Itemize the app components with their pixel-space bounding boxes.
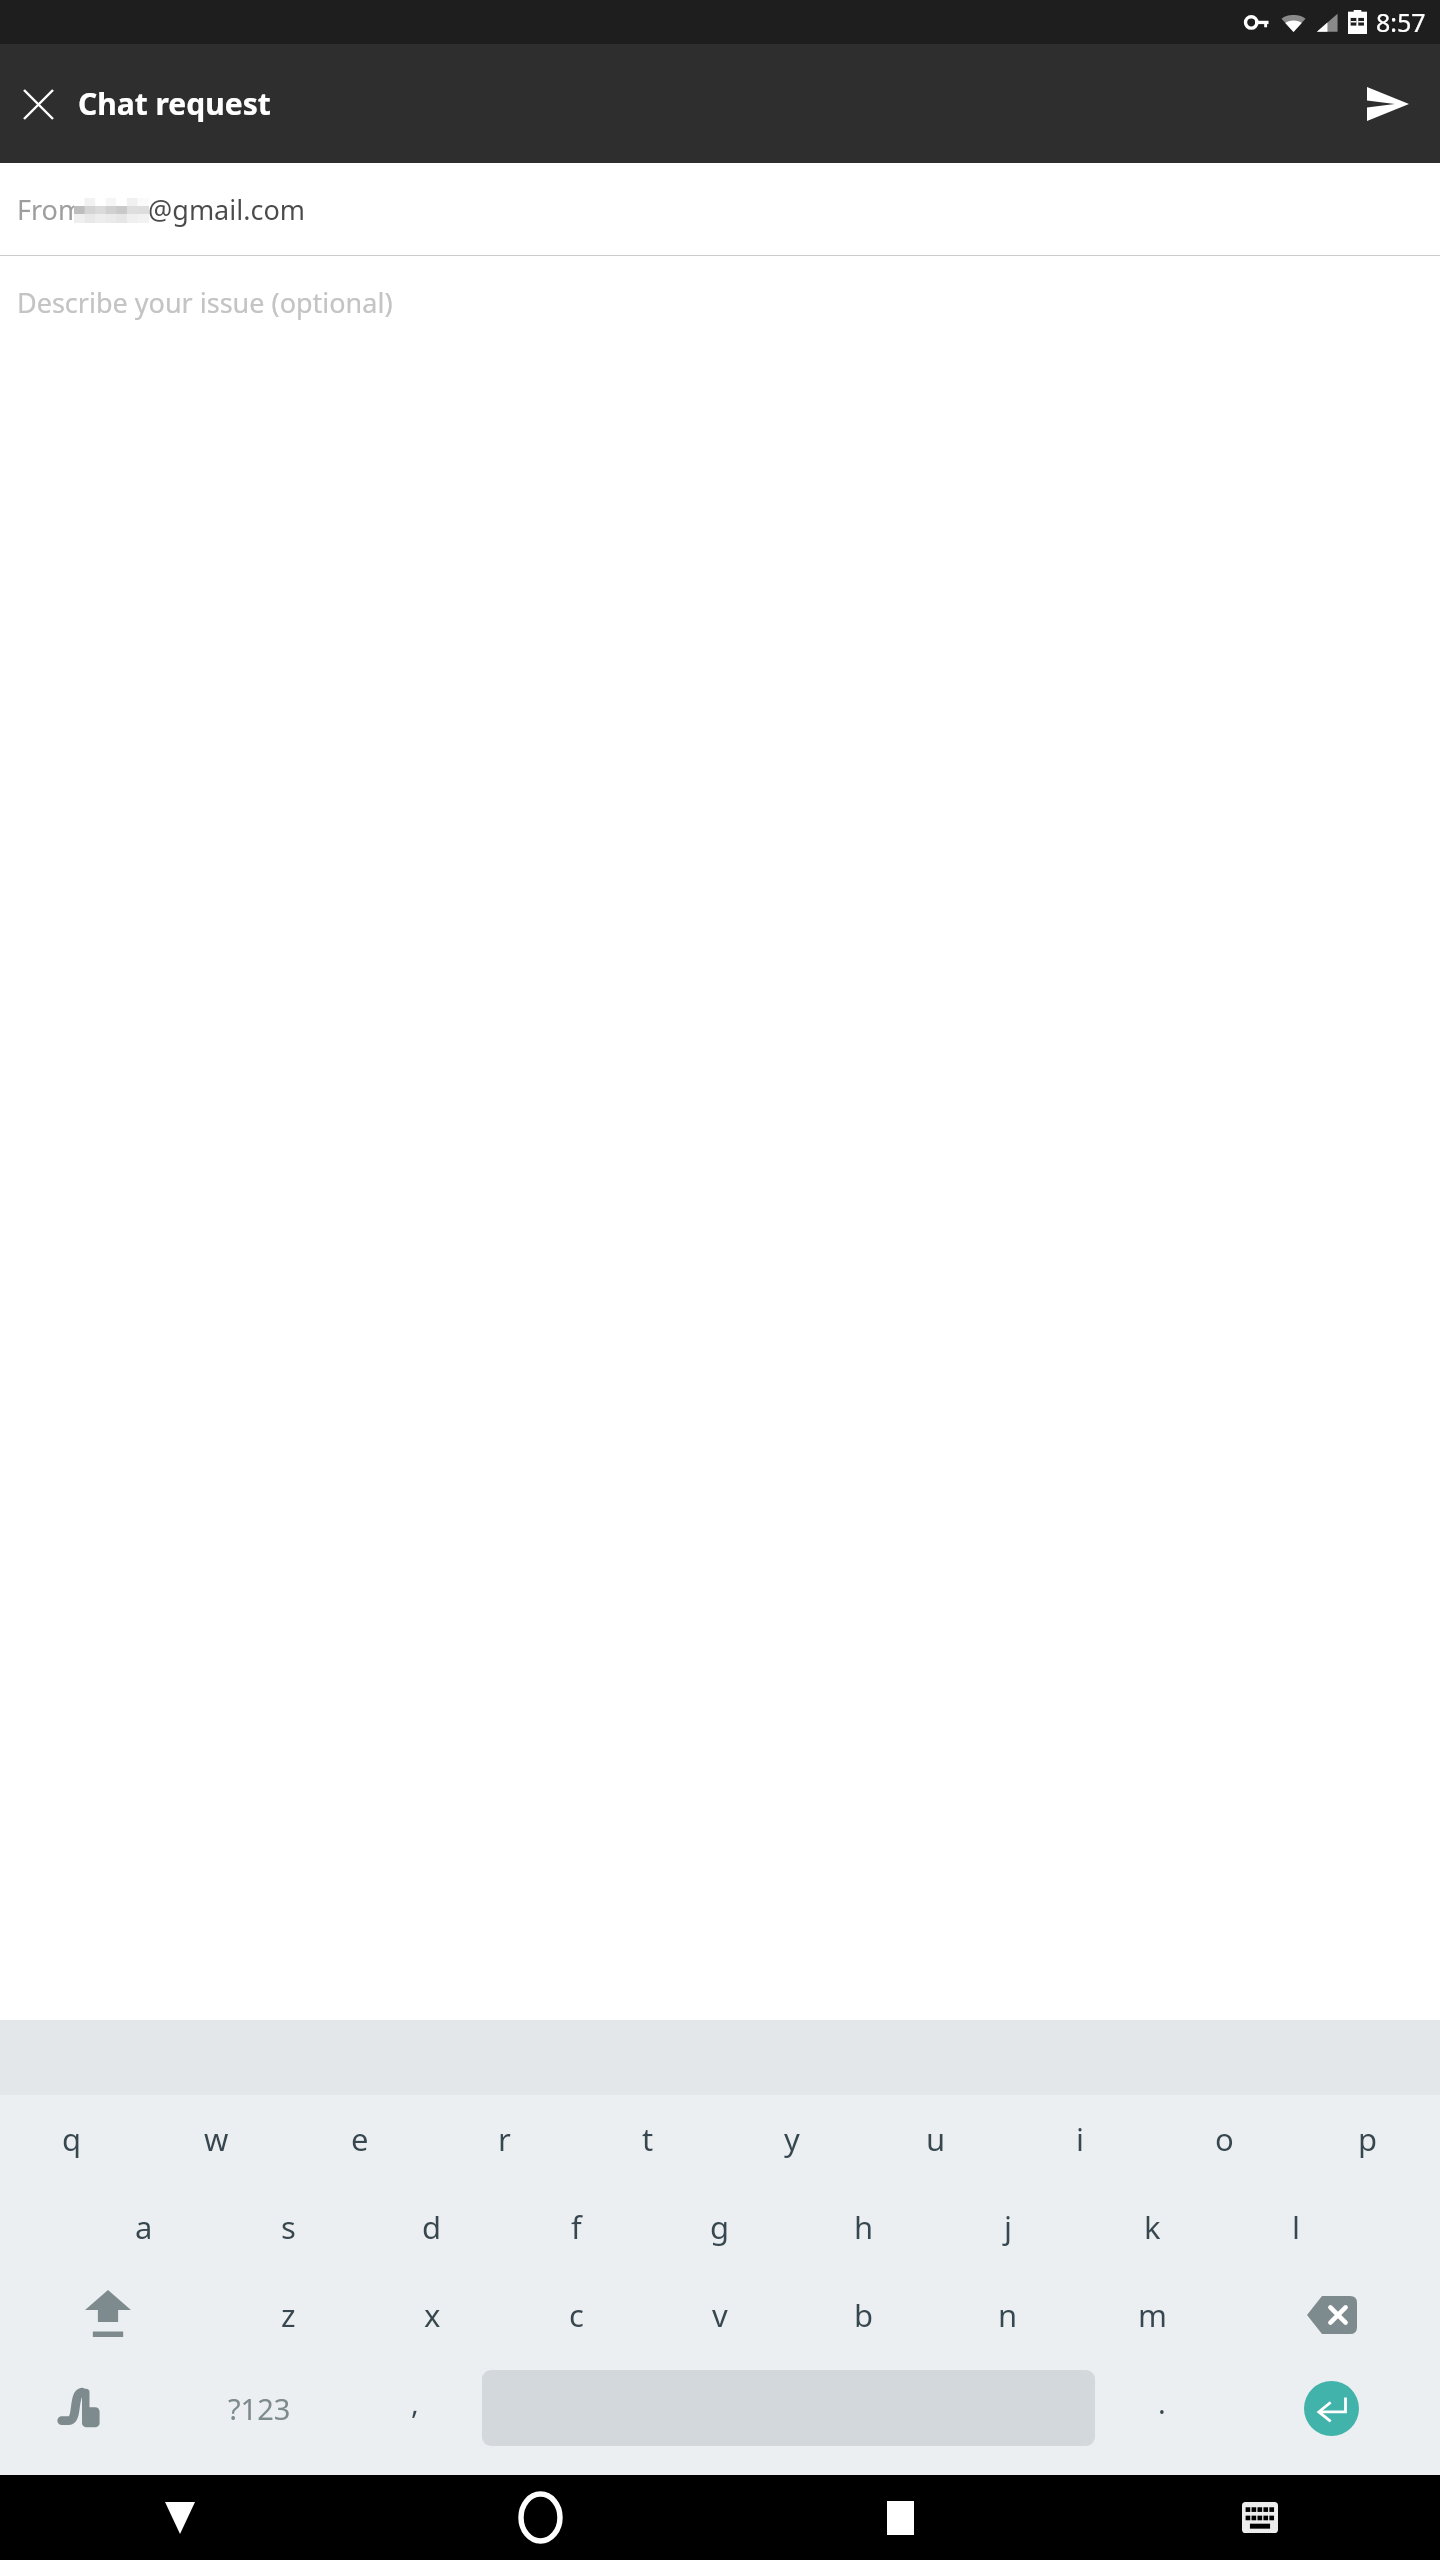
button[interactable]: s [216, 2183, 360, 2271]
staticText: h [854, 2206, 874, 2248]
button[interactable]: ?123 [164, 2359, 354, 2457]
staticText: y [784, 2118, 800, 2160]
staticText: r [498, 2118, 511, 2160]
button[interactable]: Switch keyboard [1080, 2475, 1440, 2560]
button[interactable]: Backspace [1224, 2271, 1440, 2359]
button[interactable]: w [144, 2095, 288, 2183]
staticText: c [569, 2294, 584, 2336]
staticText: o [1215, 2118, 1234, 2160]
staticText: w [204, 2118, 229, 2160]
button[interactable]: Close [10, 76, 66, 132]
button[interactable]: q [0, 2095, 144, 2183]
staticText: s [281, 2206, 296, 2248]
button[interactable]: i [1008, 2095, 1152, 2183]
button[interactable]: Glide typing [0, 2359, 164, 2457]
staticText: x [424, 2294, 441, 2336]
button[interactable]: n [936, 2271, 1080, 2359]
staticText: z [281, 2294, 296, 2336]
staticText: k [1144, 2206, 1161, 2248]
staticText: i [1076, 2118, 1084, 2160]
button[interactable]: v [648, 2271, 792, 2359]
staticText: b [854, 2294, 874, 2336]
button[interactable]: x [360, 2271, 504, 2359]
button[interactable]: Send [1356, 72, 1420, 136]
staticText: u [926, 2118, 946, 2160]
button[interactable]: . [1101, 2359, 1223, 2457]
button[interactable]: g [648, 2183, 792, 2271]
staticText: d [422, 2206, 442, 2248]
staticText: j [1004, 2206, 1012, 2248]
button[interactable]: , [354, 2359, 476, 2457]
staticText: m [1138, 2294, 1167, 2336]
staticText: Describe your issue (optional) [17, 284, 393, 321]
other: Space [476, 2370, 1101, 2446]
button[interactable]: o [1152, 2095, 1296, 2183]
button[interactable]: a [72, 2183, 216, 2271]
staticText: q [62, 2118, 82, 2160]
staticText: f [571, 2206, 582, 2248]
button[interactable]: b [792, 2271, 936, 2359]
button[interactable]: Shift [0, 2271, 216, 2359]
button[interactable]: d [360, 2183, 504, 2271]
staticText: ?123 [228, 2389, 291, 2428]
staticText: g [710, 2206, 730, 2248]
staticText: v [712, 2294, 728, 2336]
button[interactable]: c [504, 2271, 648, 2359]
button[interactable]: Back [0, 2475, 360, 2560]
staticText: n [998, 2294, 1018, 2336]
button[interactable]: j [936, 2183, 1080, 2271]
button[interactable]: Home [360, 2475, 720, 2560]
staticText: . [1158, 2383, 1166, 2422]
button[interactable]: p [1296, 2095, 1440, 2183]
staticText: l [1292, 2206, 1300, 2248]
button[interactable]: m [1080, 2271, 1224, 2359]
staticText: , [411, 2383, 419, 2422]
button[interactable]: Enter [1304, 2381, 1359, 2436]
button[interactable]: f [504, 2183, 648, 2271]
button[interactable]: r [432, 2095, 576, 2183]
staticText: p [1358, 2118, 1378, 2160]
staticText: e [351, 2118, 369, 2160]
button[interactable]: l [1224, 2183, 1368, 2271]
button[interactable]: z [216, 2271, 360, 2359]
button[interactable]: u [864, 2095, 1008, 2183]
staticText: a [135, 2206, 153, 2248]
button[interactable]: Recents [720, 2475, 1080, 2560]
staticText: 8:57 [1376, 5, 1426, 39]
button[interactable]: t [576, 2095, 720, 2183]
button[interactable]: h [792, 2183, 936, 2271]
button[interactable]: k [1080, 2183, 1224, 2271]
staticText: @gmail.com [148, 191, 305, 228]
staticText: From [17, 191, 84, 228]
button[interactable]: y [720, 2095, 864, 2183]
button[interactable]: e [288, 2095, 432, 2183]
staticText: Chat request [78, 83, 271, 124]
staticText: t [642, 2118, 654, 2160]
